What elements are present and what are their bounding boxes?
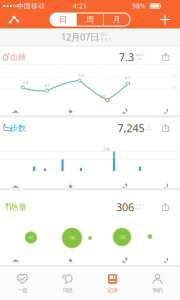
staticText: 周 [86, 15, 94, 24]
staticText: 120 [119, 234, 125, 240]
staticText: 一起 [17, 287, 27, 294]
staticText: 日 [59, 15, 67, 24]
staticText: 月 [113, 15, 121, 24]
staticText: 7,245 [117, 121, 144, 135]
staticText: 3.9 [171, 86, 176, 90]
staticText: 2.6 [100, 94, 105, 99]
staticText: 176 [69, 235, 75, 241]
staticText: 记录 [107, 287, 117, 294]
staticText: 今日 [146, 128, 152, 131]
staticText: 血糖 [10, 52, 26, 62]
button[interactable]: 周 [77, 13, 103, 26]
staticText: 5.8 [23, 80, 28, 85]
staticText: 98% [132, 2, 146, 10]
button[interactable]: 添加记录 [157, 11, 173, 27]
button[interactable]: 我的 [135, 267, 180, 300]
button[interactable]: 月 [103, 13, 130, 26]
staticText: 我的 [152, 287, 162, 294]
staticText: 2.0k [103, 146, 110, 152]
staticText: 中国移动 [17, 2, 45, 10]
button[interactable]: 一起 [0, 267, 45, 300]
button[interactable]: 趋势 [5, 11, 22, 27]
staticText: 周日 [100, 32, 108, 37]
staticText: 消息 [62, 287, 72, 294]
button[interactable]: 分享 [160, 122, 172, 134]
staticText: 4:21 [73, 2, 87, 10]
button[interactable]: 记录 [90, 267, 135, 300]
button[interactable]: 消息 [45, 267, 90, 300]
staticText: 千卡 [135, 203, 141, 207]
staticText: 6.9 [78, 72, 83, 78]
staticText: 306 [116, 200, 134, 214]
staticText: 步数 [10, 123, 26, 133]
staticText: 7.3 [119, 50, 134, 64]
staticText: 7.0 [171, 74, 176, 78]
button[interactable]: 日 [50, 13, 77, 26]
staticText: 12月07日 [61, 31, 99, 43]
staticText: 摄入 [135, 207, 141, 210]
staticText: 步 [147, 124, 150, 128]
staticText: mmol/L [135, 53, 144, 57]
staticText: 67 [29, 235, 33, 240]
staticText: 6.7 [125, 75, 130, 80]
staticText: 5.5 [45, 83, 50, 88]
button[interactable]: 分享 [160, 201, 172, 213]
staticText: 热量 [10, 202, 26, 212]
button[interactable]: 分享 [160, 51, 172, 63]
staticText: 十月廿六 [96, 37, 112, 42]
staticText: 餐后 [137, 57, 143, 61]
